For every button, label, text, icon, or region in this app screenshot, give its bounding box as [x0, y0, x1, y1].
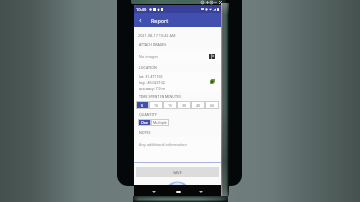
staticText: Report	[151, 17, 169, 24]
button[interactable]: SAVE	[136, 167, 219, 177]
staticText: ATTACH IMAGES	[139, 42, 167, 47]
button[interactable]: Camera	[209, 0, 213, 4]
staticText: Any additional information	[139, 142, 187, 147]
staticText: No images	[139, 54, 159, 59]
button[interactable]: Settings	[200, 0, 204, 4]
staticText: TIME SPENT IN MINUTES	[139, 94, 181, 99]
button[interactable]: 40	[191, 101, 205, 109]
staticText: QUANTITY	[139, 112, 157, 117]
button[interactable]: 60	[205, 101, 219, 109]
staticText: lng: -83.023132	[139, 80, 165, 85]
button[interactable]: Move	[205, 0, 209, 4]
staticText: 2021-08-17 10:42 AM	[138, 33, 176, 38]
button[interactable]: 30	[177, 101, 191, 109]
staticText: Multiple	[153, 120, 167, 125]
button[interactable]: Multiple	[151, 119, 169, 126]
staticText: LOCATION	[139, 65, 157, 70]
staticText: 40	[196, 103, 201, 108]
staticText: NOTES	[139, 130, 151, 135]
button[interactable]: Minimize	[213, 0, 217, 4]
button[interactable]: 5	[136, 101, 149, 109]
staticText: One	[141, 120, 149, 125]
button[interactable]: Close	[218, 0, 222, 4]
button[interactable]: Back	[134, 13, 147, 27]
button[interactable]: lat: 31.471165	[134, 72, 221, 92]
staticText: 30	[182, 103, 187, 108]
staticText: lat: 31.471165	[139, 74, 163, 79]
staticText: 10	[154, 103, 159, 108]
button[interactable]: Any additional information	[134, 137, 221, 163]
button[interactable]: One	[138, 119, 151, 126]
button[interactable]: Back	[149, 185, 159, 198]
staticText: accuracy: 7.9 m	[139, 86, 165, 91]
staticText: 60	[210, 103, 215, 108]
button[interactable]: No images	[134, 49, 221, 63]
button[interactable]: 15	[163, 101, 177, 109]
button[interactable]: Home	[173, 185, 183, 198]
staticText: SAVE	[173, 170, 182, 175]
button[interactable]: Recents	[196, 185, 206, 198]
staticText: 10:40	[136, 7, 147, 12]
staticText: 15	[168, 103, 173, 108]
staticText: 5	[141, 103, 144, 108]
button[interactable]: 10	[149, 101, 163, 109]
